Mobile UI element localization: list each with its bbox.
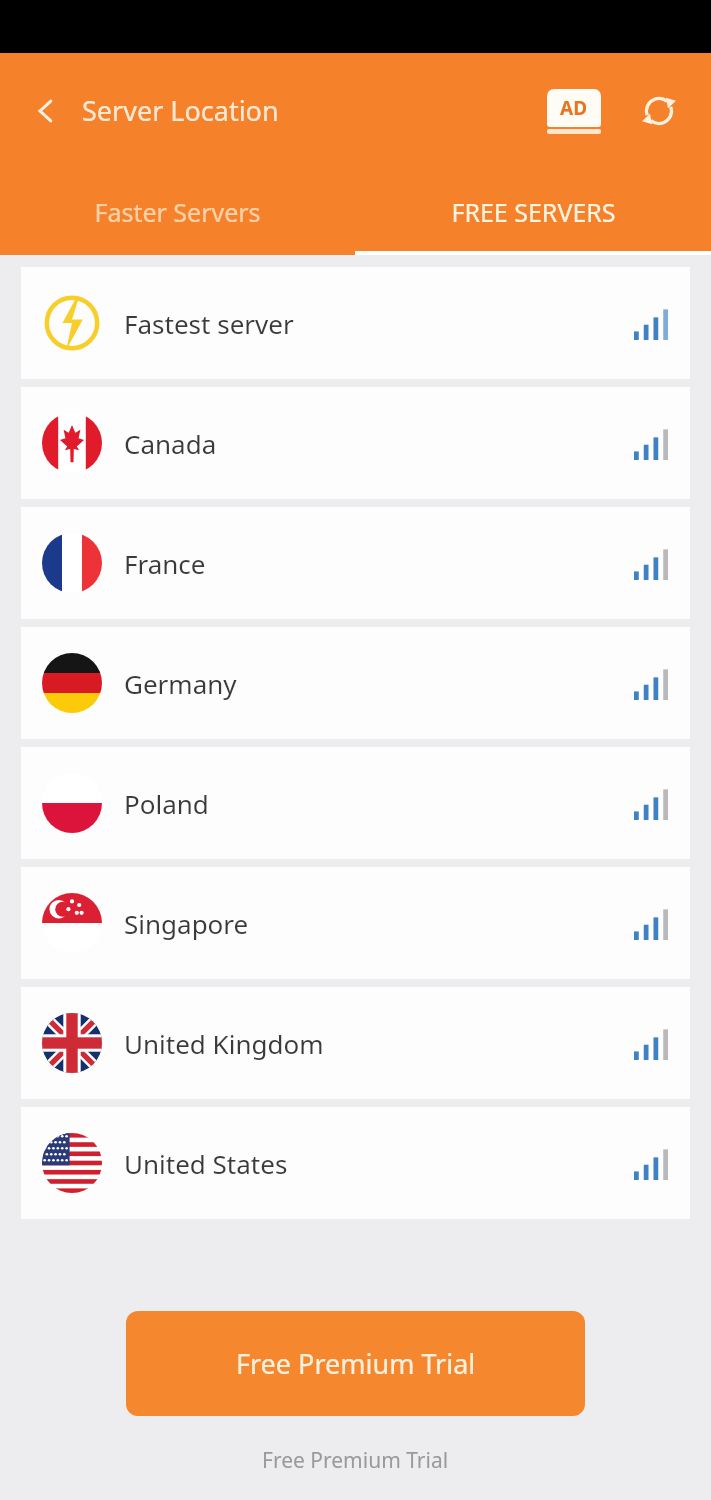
button[interactable]: United Kingdom	[21, 987, 690, 1099]
button[interactable]: FREE SERVERS	[355, 168, 711, 255]
staticText: Canada	[124, 426, 217, 461]
button[interactable]: United States	[21, 1107, 690, 1219]
staticText: Free Premium Trial	[262, 1446, 449, 1475]
button[interactable]: Faster Servers	[0, 168, 355, 255]
staticText: Faster Servers	[94, 195, 261, 229]
staticText: Fastest server	[124, 306, 294, 341]
staticText: Free Premium Trial	[236, 1345, 476, 1382]
staticText: Germany	[124, 666, 237, 701]
button[interactable]: Free Premium Trial	[126, 1311, 585, 1416]
button[interactable]: Singapore	[21, 867, 690, 979]
staticText: AD	[560, 95, 588, 121]
button[interactable]: Back	[22, 87, 70, 135]
staticText: FREE SERVERS	[451, 195, 616, 229]
button[interactable]: Advertisement	[545, 86, 603, 136]
button[interactable]: France	[21, 507, 690, 619]
button[interactable]: Fastest server	[21, 267, 690, 379]
button[interactable]: Canada	[21, 387, 690, 499]
button[interactable]: Poland	[21, 747, 690, 859]
staticText: United States	[124, 1146, 288, 1181]
staticText: Poland	[124, 786, 209, 821]
staticText: United Kingdom	[124, 1026, 324, 1061]
button[interactable]: Germany	[21, 627, 690, 739]
staticText: Singapore	[124, 906, 249, 941]
staticText: France	[124, 546, 206, 581]
staticText: Server Location	[82, 92, 279, 129]
button[interactable]: Refresh	[635, 87, 683, 135]
